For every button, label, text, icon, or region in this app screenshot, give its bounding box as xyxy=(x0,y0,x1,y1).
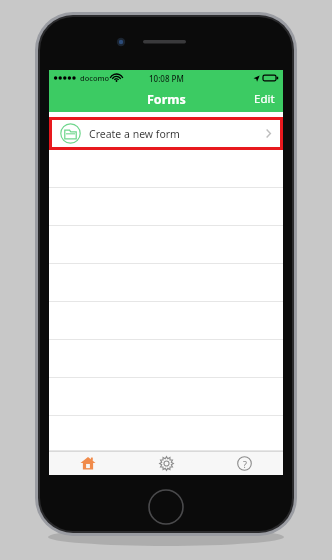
button[interactable]: Home xyxy=(49,451,127,475)
button[interactable] xyxy=(49,188,283,226)
button[interactable] xyxy=(49,150,283,188)
staticText: docomo xyxy=(80,73,110,83)
button[interactable] xyxy=(49,302,283,340)
staticText: 10:08 PM xyxy=(149,73,184,84)
staticText: Edit xyxy=(254,91,275,107)
button[interactable] xyxy=(49,378,283,416)
staticText: Forms xyxy=(147,91,186,108)
button[interactable] xyxy=(49,416,283,451)
button[interactable] xyxy=(49,264,283,302)
button[interactable] xyxy=(49,226,283,264)
button[interactable]: Create a new form xyxy=(52,120,280,147)
button[interactable] xyxy=(49,340,283,378)
button[interactable]: Edit xyxy=(246,87,283,111)
button[interactable]: Settings xyxy=(127,451,205,475)
staticText: ? xyxy=(243,458,247,470)
button[interactable]: Help xyxy=(205,451,283,475)
staticText: Create a new form xyxy=(89,127,180,141)
